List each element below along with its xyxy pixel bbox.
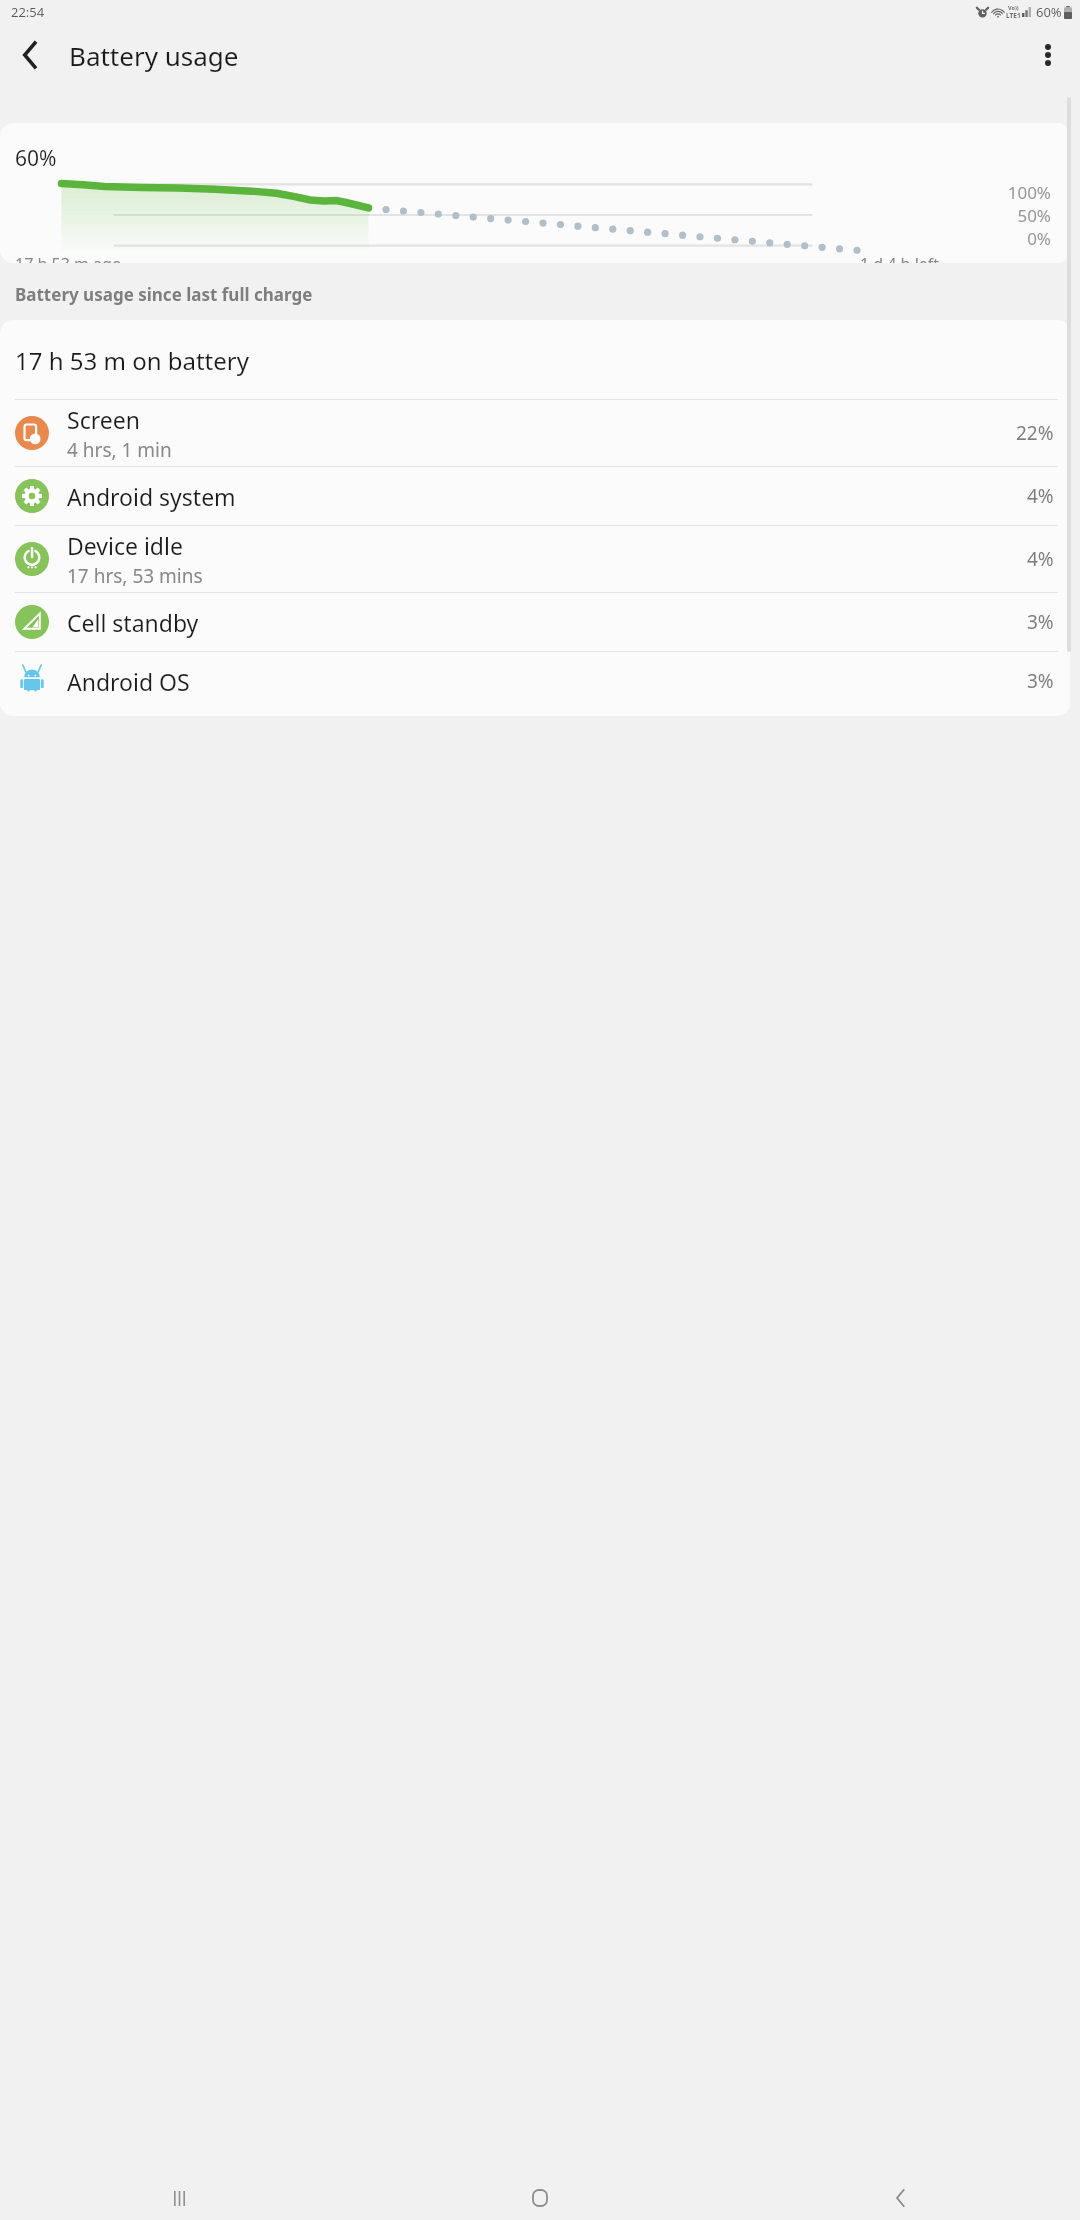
staticText: Android system [67,481,236,512]
button[interactable]: Android OS [0,652,1070,710]
staticText: Battery usage since last full charge [15,283,313,306]
staticText: 0% [1027,227,1051,249]
button[interactable]: Android system [0,467,1070,525]
staticText: 22:54 [11,3,45,21]
staticText: 4% [1027,546,1054,572]
staticText: Battery usage [69,38,239,73]
staticText: Screen [67,404,140,435]
staticText: 4 hrs, 1 min [67,437,172,463]
staticText: Vo)) [1008,4,1019,11]
staticText: 17 h 53 m ago [15,253,122,263]
staticText: 50% [1017,204,1051,227]
button[interactable]: More options [1022,29,1074,81]
button[interactable]: Screen [0,400,1070,466]
staticText: 17 h 53 m on battery [15,344,249,377]
staticText: 22% [1016,420,1054,446]
staticText: Device idle [67,530,183,561]
staticText: 17 hrs, 53 mins [67,563,203,589]
staticText: Cell standby [67,607,199,638]
staticText: 3% [1027,609,1054,635]
button[interactable]: Back [720,2176,1080,2220]
button[interactable]: Home [360,2176,720,2220]
staticText: LTE1 [1006,11,1021,20]
button[interactable]: Cell standby [0,593,1070,651]
staticText: 60% [1036,3,1062,21]
button[interactable]: Recents [0,2176,360,2220]
staticText: 1 d 4 h left [860,253,940,263]
button[interactable]: Back [4,29,56,81]
staticText: 3% [1027,668,1054,694]
staticText: 100% [1007,181,1051,204]
staticText: 60% [15,144,57,173]
staticText: 4% [1027,483,1054,509]
staticText: Android OS [67,666,190,697]
button[interactable]: Device idle [0,526,1070,592]
